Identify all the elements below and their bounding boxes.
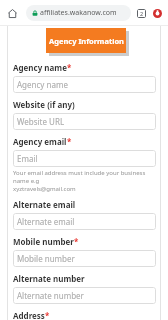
- button[interactable]: Website URL: [13, 113, 156, 130]
- button[interactable]: Alternate email: [13, 213, 156, 230]
- staticText: Address: [13, 310, 45, 320]
- staticText: Alternate email: [13, 199, 76, 210]
- button[interactable]: Extensions: [150, 6, 164, 20]
- staticText: 2: [140, 10, 144, 17]
- staticText: Agency Information: [49, 36, 124, 46]
- staticText: *: [67, 136, 72, 147]
- button[interactable]: Alternate number: [13, 287, 156, 304]
- staticText: affiliates.wakanow.com: [40, 8, 117, 18]
- staticText: *: [45, 310, 50, 320]
- button[interactable]: Email: [13, 150, 156, 167]
- button[interactable]: Agency name: [13, 76, 156, 93]
- staticText: Email: [17, 153, 38, 164]
- button[interactable]: Tabs, 2 open: [134, 6, 148, 20]
- button[interactable]: Home: [4, 5, 20, 21]
- staticText: Agency email: [13, 136, 67, 147]
- staticText: Agency name: [17, 79, 68, 90]
- staticText: Alternate number: [13, 273, 85, 284]
- staticText: *: [74, 236, 79, 247]
- staticText: Your email address must include your bus…: [13, 169, 156, 193]
- button[interactable]: Mobile number: [13, 250, 156, 267]
- button[interactable]: Agency Information: [46, 28, 126, 53]
- staticText: Alternate email: [17, 216, 75, 227]
- staticText: Website (if any): [13, 99, 75, 110]
- staticText: Mobile number: [17, 253, 75, 264]
- staticText: Alternate number: [17, 290, 84, 301]
- button[interactable]: affiliates.wakanow.com: [26, 5, 131, 21]
- staticText: Agency name: [13, 62, 67, 73]
- staticText: Mobile number: [13, 236, 74, 247]
- staticText: Website URL: [17, 116, 65, 127]
- staticText: *: [67, 62, 72, 73]
